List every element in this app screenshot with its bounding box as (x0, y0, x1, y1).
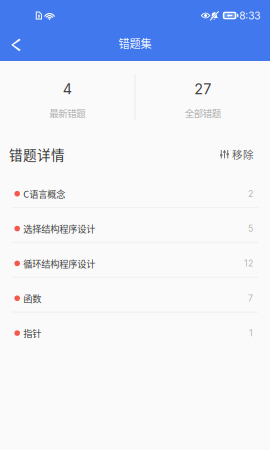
staticText: 错题详情 (9, 144, 65, 164)
staticText: 5 (248, 223, 253, 234)
staticText: C语言概念 (23, 187, 65, 200)
staticText: 7 (248, 293, 253, 303)
staticText: 指针 (23, 326, 41, 340)
staticText: 循环结构程序设计 (23, 257, 95, 270)
staticText: 选择结构程序设计 (23, 222, 95, 235)
button[interactable]: 函数 (0, 285, 270, 312)
staticText: 最新错题 (49, 106, 85, 120)
button[interactable]: 移除 (220, 147, 254, 162)
button[interactable]: 指针 (0, 320, 270, 346)
button[interactable]: Back (0, 25, 32, 61)
staticText: 27 (194, 80, 211, 98)
staticText: 错题集 (118, 35, 151, 51)
staticText: 8:33 (239, 10, 260, 22)
staticText: 移除 (232, 147, 254, 162)
staticText: 4 (63, 80, 72, 98)
staticText: 1 (249, 328, 253, 338)
staticText: 12 (244, 258, 253, 269)
staticText: 全部错题 (185, 106, 221, 120)
button[interactable]: 选择结构程序设计 (0, 215, 270, 242)
button[interactable]: C语言概念 (0, 180, 270, 207)
button[interactable]: 循环结构程序设计 (0, 250, 270, 277)
staticText: 函数 (23, 292, 41, 305)
staticText: 2 (248, 188, 253, 199)
